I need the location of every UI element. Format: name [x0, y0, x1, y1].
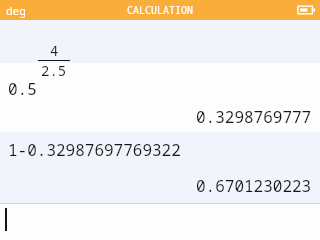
- button[interactable]: 1-0.32987697769322: [0, 132, 320, 203]
- button[interactable]: Battery: [298, 4, 316, 16]
- button[interactable]: deg: [6, 3, 26, 18]
- staticText: 4: [50, 41, 59, 60]
- staticText: 0.3298769777: [196, 106, 312, 128]
- staticText: 1-0.32987697769322: [8, 139, 181, 161]
- button[interactable]: 0.5: [0, 63, 320, 132]
- staticText: CALCULATION: [127, 3, 193, 17]
- staticText: 2.5: [41, 61, 67, 80]
- staticText: 0.5: [8, 78, 37, 100]
- button[interactable]: [0, 204, 320, 240]
- staticText: 0.6701230223: [196, 175, 312, 197]
